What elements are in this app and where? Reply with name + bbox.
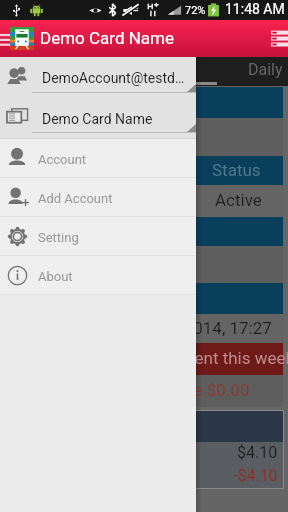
staticText: Add Account [38, 191, 113, 206]
staticText: $4.10 [237, 443, 278, 462]
staticText: Demo Card Name [42, 111, 192, 127]
button[interactable]: Weekly [120, 57, 217, 86]
button[interactable]: 30 Oct 2014, 17:27 [4, 314, 283, 343]
button[interactable]: More options [271, 30, 288, 46]
button[interactable]: Add Account [0, 178, 196, 216]
staticText: 30 Oct 2014, 17:27 [130, 318, 272, 338]
staticText: Setting [38, 230, 79, 245]
staticText: Daily [248, 60, 283, 79]
staticText: Status [212, 160, 261, 180]
button[interactable]: DemoAccount@testd… [0, 57, 196, 98]
button[interactable]: e [4, 118, 283, 156]
button[interactable]: Open navigation drawer [0, 28, 13, 50]
button[interactable] [4, 283, 283, 314]
button[interactable]: Daily [217, 57, 288, 86]
staticText: Account [38, 152, 87, 167]
staticText: About [38, 269, 73, 284]
staticText: Active [215, 190, 262, 210]
staticText: Weekly [143, 60, 194, 79]
button[interactable] [4, 217, 283, 246]
staticText: 11:48 AM [225, 1, 285, 17]
staticText: Demo Card Name [40, 28, 175, 48]
staticText: -$4.10 [233, 466, 278, 485]
button[interactable]: Balance $0.00 [4, 375, 283, 407]
button[interactable] [4, 87, 283, 118]
button[interactable]: About [0, 256, 196, 294]
button[interactable]: Total spent this week [4, 343, 283, 375]
button[interactable]: Setting [0, 217, 196, 255]
staticText: e [188, 126, 198, 146]
staticText: DemoAccount@testd… [42, 70, 192, 86]
staticText: 72% [185, 4, 206, 17]
button[interactable]: Active [4, 185, 283, 217]
button[interactable]: Account [0, 139, 196, 177]
staticText: Total spent this week [134, 348, 288, 368]
staticText: Balance $0.00 [142, 380, 250, 400]
button[interactable]: Demo Card Name [0, 98, 196, 138]
button[interactable]: Status [4, 156, 283, 185]
button[interactable] [4, 246, 283, 283]
